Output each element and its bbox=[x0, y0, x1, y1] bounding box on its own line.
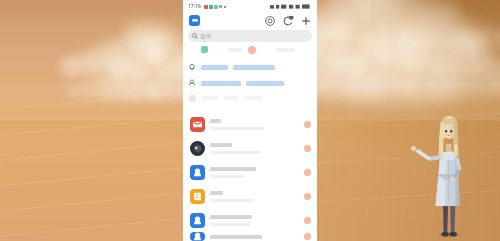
button[interactable]: Add bbox=[300, 15, 311, 26]
button[interactable] bbox=[189, 91, 311, 105]
button[interactable] bbox=[190, 208, 311, 232]
button[interactable]: Calls bbox=[282, 15, 293, 26]
button[interactable] bbox=[190, 112, 311, 136]
button[interactable] bbox=[188, 75, 311, 91]
other: Avatar bbox=[0, 0, 500, 241]
button[interactable] bbox=[190, 184, 311, 208]
button[interactable] bbox=[188, 59, 311, 75]
staticText: 17:16 bbox=[188, 3, 201, 10]
button[interactable] bbox=[190, 136, 311, 160]
button[interactable]: Friends bbox=[189, 15, 200, 26]
button[interactable] bbox=[190, 160, 311, 184]
staticText: 검색 bbox=[200, 33, 211, 40]
button[interactable]: Music bbox=[264, 15, 275, 26]
button[interactable] bbox=[190, 232, 311, 241]
button[interactable]: 검색 bbox=[188, 30, 312, 42]
